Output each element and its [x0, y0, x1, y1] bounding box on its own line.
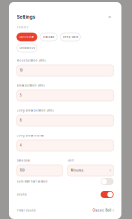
button[interactable]: 10 [17, 65, 114, 76]
button[interactable]: Ultra Focus [17, 44, 37, 52]
button[interactable]: 100 [17, 165, 63, 176]
staticText: Long Break Duration (min) [17, 109, 54, 112]
staticText: Timer Sound [17, 209, 36, 212]
staticText: Sound [17, 193, 27, 196]
staticText: 10 [20, 69, 23, 72]
button[interactable]: Deep Work [60, 33, 80, 41]
staticText: 100 [20, 169, 25, 172]
button[interactable]: 5 [17, 90, 114, 101]
staticText: ✕ [108, 15, 111, 19]
staticText: Classic Bell [93, 209, 112, 212]
staticText: Settings [17, 14, 35, 20]
staticText: Unit [68, 159, 74, 162]
button[interactable]: 4 [17, 140, 114, 151]
staticText: PRESETS [17, 26, 29, 29]
staticText: Break Duration (min) [17, 84, 45, 87]
staticText: Ultra Focus [19, 46, 34, 50]
button[interactable]: 8 [17, 115, 114, 126]
staticText: v [110, 169, 111, 172]
staticText: Long Break Interval [17, 134, 44, 137]
staticText: Quick Start [19, 35, 34, 39]
staticText: v [113, 209, 114, 212]
staticText: Standard [43, 35, 55, 39]
staticText: Deep Work [63, 35, 78, 39]
button[interactable]: Auto-start next session [101, 178, 114, 185]
button[interactable]: Minutes [68, 165, 114, 176]
button[interactable]: Quick Start [17, 33, 37, 41]
staticText: Daily Goal [17, 159, 30, 162]
staticText: 5 [20, 94, 22, 97]
button[interactable]: Close [106, 13, 114, 21]
staticText: 4 [20, 144, 22, 147]
staticText: Auto-start next session [17, 180, 48, 183]
staticText: Minutes [71, 169, 84, 172]
staticText: 8 [20, 119, 22, 122]
button[interactable]: Classic Bell [93, 209, 114, 212]
button[interactable]: Standard [40, 33, 57, 41]
button[interactable]: Sound [101, 191, 114, 198]
staticText: Focus Duration (min) [17, 59, 46, 62]
